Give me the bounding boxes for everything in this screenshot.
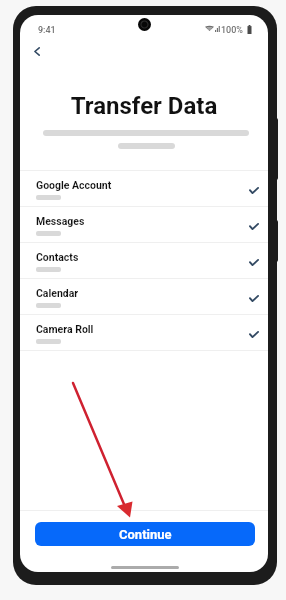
staticText: Contacts: [36, 251, 79, 263]
staticText: 100%: [221, 25, 243, 36]
button[interactable]: Messages: [20, 207, 268, 243]
button[interactable]: Calendar: [20, 279, 268, 315]
staticText: Camera Roll: [36, 323, 94, 335]
button[interactable]: Contacts: [20, 243, 268, 279]
button[interactable]: Back: [25, 38, 49, 62]
staticText: Transfer Data: [20, 92, 268, 120]
staticText: Calendar: [36, 287, 79, 299]
button[interactable]: Camera Roll: [20, 315, 268, 351]
staticText: Messages: [36, 215, 85, 227]
staticText: Google Account: [36, 179, 112, 191]
staticText: Continue: [119, 527, 172, 542]
staticText: 9:41: [38, 25, 56, 36]
button[interactable]: Continue: [35, 522, 255, 546]
button[interactable]: Google Account: [20, 171, 268, 207]
